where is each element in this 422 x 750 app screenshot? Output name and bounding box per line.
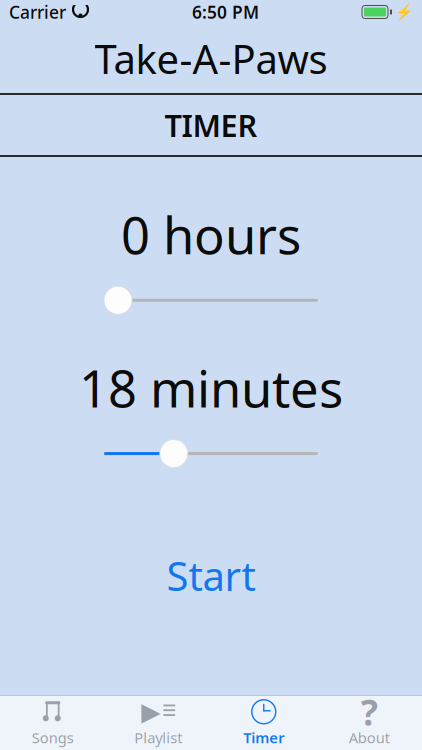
- button[interactable]: ▶: [105, 696, 211, 750]
- staticText: ?: [361, 688, 378, 736]
- staticText: TIMER: [164, 105, 257, 145]
- button[interactable]: Timer: [211, 696, 316, 750]
- staticText: Songs: [32, 728, 74, 747]
- staticText: Carrier: [9, 0, 66, 23]
- staticText: About: [349, 728, 390, 747]
- staticText: 18 minutes: [79, 354, 343, 422]
- button[interactable]: Start: [111, 552, 311, 600]
- staticText: ▶: [141, 697, 160, 726]
- staticText: Take-A-Paws: [94, 32, 327, 85]
- staticText: Playlist: [134, 728, 182, 747]
- button[interactable]: Songs: [0, 696, 105, 750]
- staticText: ⚡: [395, 4, 413, 20]
- button[interactable]: ?: [316, 696, 422, 750]
- staticText: Start: [166, 549, 255, 602]
- staticText: 6:50 PM: [192, 0, 259, 23]
- staticText: Timer: [243, 728, 284, 747]
- staticText: 0 hours: [121, 201, 301, 268]
